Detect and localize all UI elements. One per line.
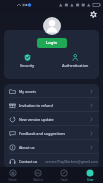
staticText: service.PlayMarkets@gmail.com (45, 159, 98, 164)
button[interactable]: Feedback and suggestions (4, 126, 99, 140)
button[interactable]: Home (0, 167, 25, 183)
button[interactable]: About us (4, 140, 99, 154)
button[interactable]: Contact us (4, 154, 99, 168)
staticText: Security (20, 63, 35, 68)
button[interactable]: New version update (4, 112, 99, 126)
button[interactable]: Trade (51, 167, 77, 183)
staticText: My assets (19, 89, 36, 94)
button[interactable]: Profile photo (43, 17, 61, 35)
button[interactable]: Settings (88, 9, 99, 20)
button[interactable]: My assets (4, 84, 99, 98)
button[interactable]: Market (25, 167, 51, 183)
staticText: New version update (19, 117, 54, 122)
staticText: Home (8, 178, 17, 182)
button[interactable]: Invitation to refund (4, 98, 99, 112)
button[interactable]: Security (4, 54, 51, 68)
staticText: Trade (60, 178, 68, 182)
staticText: User (87, 178, 94, 182)
staticText: Market (33, 178, 43, 182)
staticText: Contact us (19, 159, 38, 164)
staticText: Invitation to refund (19, 103, 53, 108)
staticText: About us (19, 145, 35, 150)
button[interactable]: Login (37, 38, 67, 48)
button[interactable]: Authentication (51, 54, 99, 68)
staticText: Feedback and suggestions (19, 131, 65, 136)
staticText: Login (46, 40, 58, 46)
staticText: Authentication (62, 63, 89, 68)
button[interactable]: User (77, 167, 103, 183)
